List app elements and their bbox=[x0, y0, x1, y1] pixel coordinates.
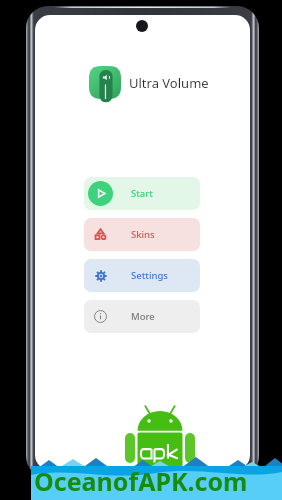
staticText: Ultra Volume bbox=[129, 74, 209, 92]
button[interactable]: More bbox=[84, 300, 200, 333]
staticText: Settings bbox=[131, 269, 168, 282]
staticText: More bbox=[131, 310, 155, 323]
button[interactable]: Settings bbox=[84, 259, 200, 292]
button[interactable]: Skins bbox=[84, 218, 200, 251]
staticText: Start bbox=[131, 187, 153, 200]
staticText: OceanofAPK.com bbox=[34, 464, 248, 498]
staticText: Skins bbox=[131, 228, 155, 241]
button[interactable]: Start bbox=[84, 177, 200, 210]
